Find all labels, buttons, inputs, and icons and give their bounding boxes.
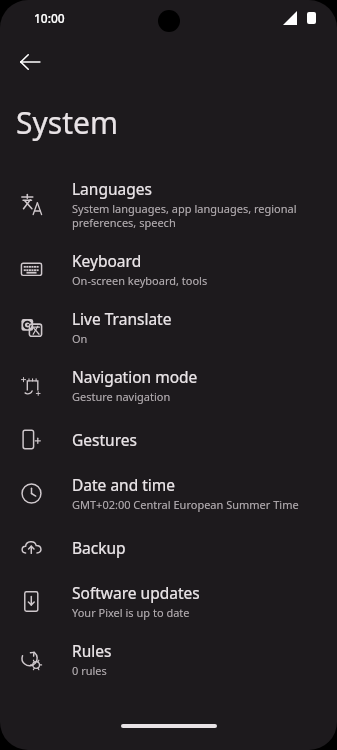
- button[interactable]: Gestures: [0, 414, 337, 464]
- staticText: Gesture navigation: [72, 389, 171, 404]
- staticText: GMT+02:00 Central European Summer Time: [72, 497, 299, 512]
- button[interactable]: Back: [8, 40, 52, 84]
- button[interactable]: Navigation mode: [0, 356, 337, 414]
- staticText: System languages, app languages, regiona…: [72, 201, 297, 230]
- staticText: Software updates: [72, 582, 200, 603]
- staticText: Backup: [72, 537, 126, 558]
- button[interactable]: Keyboard: [0, 240, 337, 298]
- button[interactable]: Backup: [0, 522, 337, 572]
- button[interactable]: Languages: [0, 168, 337, 240]
- staticText: Keyboard: [72, 250, 142, 271]
- staticText: System: [16, 102, 118, 143]
- staticText: Live Translate: [72, 308, 172, 329]
- staticText: Languages: [72, 178, 152, 199]
- staticText: On-screen keyboard, tools: [72, 273, 208, 288]
- staticText: 10:00: [34, 10, 65, 26]
- staticText: 0 rules: [72, 663, 107, 678]
- staticText: Your Pixel is up to date: [72, 605, 190, 620]
- staticText: Rules: [72, 640, 112, 661]
- staticText: Navigation mode: [72, 366, 198, 387]
- staticText: Date and time: [72, 474, 176, 495]
- button[interactable]: Software updates: [0, 572, 337, 630]
- staticText: On: [72, 331, 88, 346]
- staticText: Gestures: [72, 429, 137, 450]
- button[interactable]: Date and time: [0, 464, 337, 522]
- button[interactable]: Live Translate: [0, 298, 337, 356]
- button[interactable]: Rules: [0, 630, 337, 688]
